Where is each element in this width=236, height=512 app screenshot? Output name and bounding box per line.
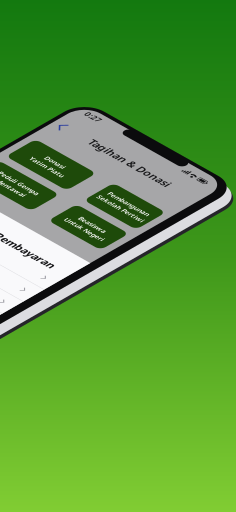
button[interactable]: Donasi (95, 167, 165, 202)
button[interactable]: Beasiswa (184, 210, 236, 243)
staticText: 0:27 (98, 107, 115, 117)
button[interactable]: Peduli Gempa (95, 210, 165, 243)
staticText: Tagihan & Donasi (128, 131, 219, 145)
staticText: Sekolah Pertiwi (188, 185, 236, 194)
staticText: Pembangunan (191, 175, 236, 184)
staticText: Yatim Piatu (111, 185, 149, 194)
button[interactable]: Back (93, 133, 102, 146)
button[interactable]: Pembangunan (184, 167, 236, 202)
staticText: Beasiswa (199, 217, 229, 226)
staticText: Untuk Negeri (192, 227, 236, 236)
staticText: Peduli Gempa (107, 217, 152, 226)
staticText: Mentawai (113, 227, 146, 236)
